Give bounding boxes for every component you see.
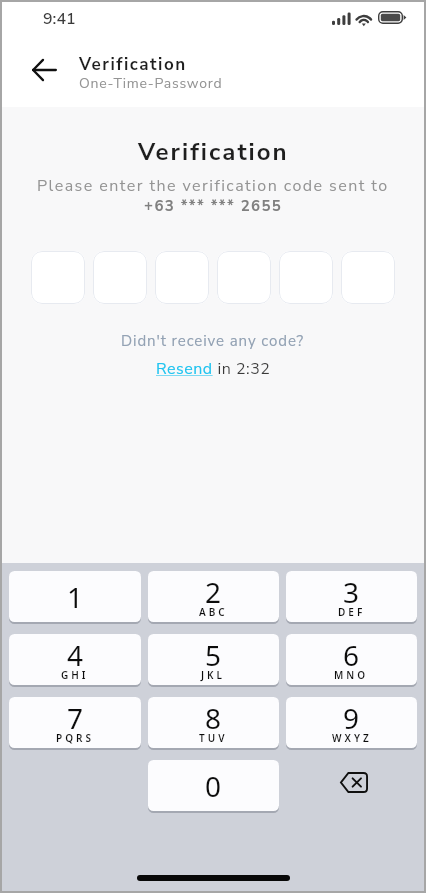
button[interactable]: 3 — [286, 571, 417, 624]
staticText: 0 — [205, 767, 222, 805]
button[interactable]: 4 — [9, 634, 141, 687]
staticText: 2 — [205, 573, 222, 611]
staticText: Resend — [156, 358, 213, 380]
staticText: ABC — [199, 605, 228, 619]
staticText: 7 — [67, 699, 84, 737]
button[interactable]: 5 — [148, 634, 279, 687]
button[interactable]: 9 — [286, 697, 417, 750]
staticText: GHI — [61, 668, 89, 682]
staticText: in 2:32 — [213, 358, 271, 380]
button[interactable]: Back — [20, 47, 68, 92]
button[interactable] — [341, 251, 395, 304]
staticText: TUV — [199, 731, 228, 745]
button[interactable]: 6 — [286, 634, 417, 687]
button[interactable] — [31, 251, 85, 304]
button[interactable]: Resend — [156, 358, 213, 380]
staticText: +63 *** *** 2655 — [144, 196, 283, 216]
staticText: 8 — [205, 699, 222, 737]
staticText: One-Time-Password — [79, 74, 223, 93]
button[interactable]: 8 — [148, 697, 279, 750]
button[interactable]: 7 — [9, 697, 141, 750]
staticText: MNO — [334, 668, 369, 682]
button[interactable]: 2 — [148, 571, 279, 624]
button[interactable]: Backspace — [319, 757, 389, 807]
staticText: PQRS — [56, 731, 94, 745]
staticText: 9 — [343, 699, 360, 737]
staticText: Didn't receive any code? — [121, 331, 305, 351]
button[interactable] — [279, 251, 333, 304]
staticText: Please enter the verification code sent … — [37, 175, 389, 197]
staticText: 6 — [343, 636, 360, 674]
staticText: 1 — [67, 578, 84, 616]
staticText: Verification — [138, 136, 289, 169]
staticText: JKL — [201, 668, 226, 682]
staticText: 9:41 — [43, 8, 76, 30]
button[interactable]: 0 — [148, 760, 279, 813]
button[interactable] — [93, 251, 147, 304]
staticText: WXYZ — [332, 731, 372, 745]
staticText: Verification — [79, 53, 187, 76]
staticText: 5 — [205, 636, 222, 674]
staticText: DEF — [338, 605, 366, 619]
button[interactable] — [155, 251, 209, 304]
button[interactable] — [217, 251, 271, 304]
staticText: 4 — [67, 636, 84, 674]
button[interactable]: 1 — [9, 571, 141, 624]
staticText: 3 — [343, 573, 360, 611]
